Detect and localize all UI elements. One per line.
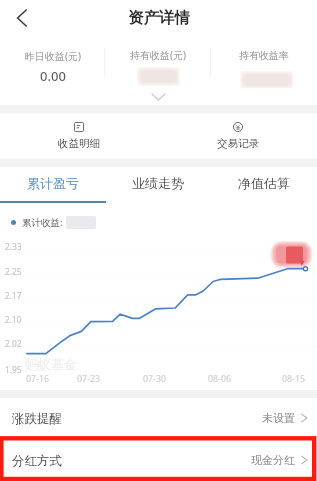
button[interactable]: 业绩走势 (105, 167, 211, 201)
staticText: 1.95 (5, 364, 22, 375)
button[interactable]: Expand (0, 88, 317, 105)
staticText: 2.02 (5, 338, 22, 349)
button[interactable]: 涨跌提醒 (0, 398, 317, 442)
staticText: 业绩走势 (132, 175, 184, 191)
staticText: 分红方式 (12, 453, 62, 469)
button[interactable]: 收益明细 (0, 113, 158, 159)
staticText: 0.00 (40, 67, 66, 85)
button[interactable]: 分红方式 (0, 442, 317, 481)
staticText: 昨日收益(元) (25, 49, 81, 63)
staticText: 2.25 (5, 266, 22, 277)
button[interactable]: Back (11, 7, 33, 29)
staticText: 收益明细 (58, 137, 100, 150)
staticText: 资产详情 (128, 8, 190, 28)
staticText: 2.10 (5, 314, 22, 325)
staticText: 累计收益: (22, 216, 63, 229)
staticText: 现金分红 (251, 453, 295, 467)
button[interactable]: 累计盈亏 (0, 167, 105, 201)
staticText: 07-23 (77, 373, 100, 385)
staticText: 2.33 (5, 241, 22, 252)
staticText: 累计盈亏 (27, 175, 79, 191)
staticText: 07-30 (143, 373, 166, 385)
staticText: 未设置 (262, 411, 295, 425)
staticText: 持有收益率 (239, 49, 289, 62)
staticText: 08-06 (208, 373, 231, 385)
staticText: 07-16 (26, 373, 49, 385)
staticText: 蚂蚁基金 (25, 356, 77, 372)
staticText: 涨跌提醒 (12, 411, 62, 427)
staticText: 交易记录 (217, 137, 259, 150)
button[interactable]: 净值估算 (211, 167, 317, 201)
staticText: 净值估算 (238, 175, 290, 191)
staticText: 08-15 (282, 373, 305, 385)
staticText: 2.17 (5, 290, 22, 301)
button[interactable]: 交易记录 (158, 113, 317, 159)
staticText: 持有收益(元) (130, 48, 186, 62)
